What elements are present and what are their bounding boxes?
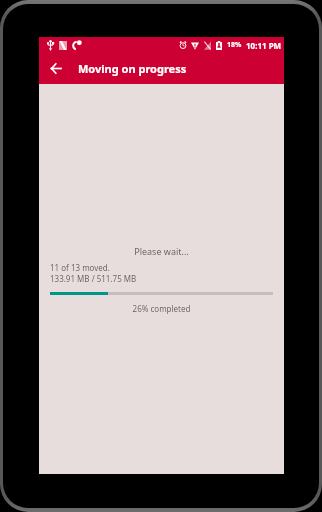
button[interactable]: Back [45, 53, 67, 84]
staticText: 133.91 MB / 511.75 MB [50, 273, 137, 284]
staticText: Moving on progress [78, 61, 187, 76]
staticText: Please wait... [39, 245, 284, 257]
staticText: 11 of 13 moved. [50, 262, 110, 273]
staticText: 10:11 PM [246, 40, 282, 51]
staticText: 26% completed [39, 303, 284, 314]
staticText: 18% [227, 40, 242, 50]
